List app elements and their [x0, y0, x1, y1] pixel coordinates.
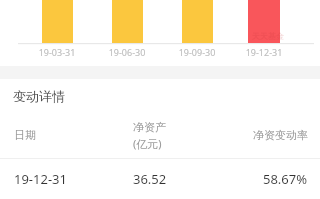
staticText: 19-03-31 — [29, 46, 85, 58]
staticText: 日期 — [14, 128, 36, 142]
button[interactable]: 变动详情 — [0, 79, 320, 112]
button[interactable]: 19-12-31 — [0, 159, 320, 199]
staticText: 净资产 — [133, 120, 166, 134]
staticText: 19-06-30 — [99, 46, 155, 58]
staticText: 19-12-31 — [236, 46, 292, 58]
staticText: 58.67% — [263, 170, 308, 188]
staticText: 19-12-31 — [14, 170, 67, 188]
staticText: 36.52 — [133, 170, 167, 188]
staticText: (亿元) — [133, 136, 162, 151]
staticText: 天天基金 — [252, 31, 284, 41]
staticText: 净资变动率 — [253, 128, 308, 142]
staticText: 变动详情 — [13, 88, 65, 104]
staticText: 19-09-30 — [169, 46, 225, 58]
